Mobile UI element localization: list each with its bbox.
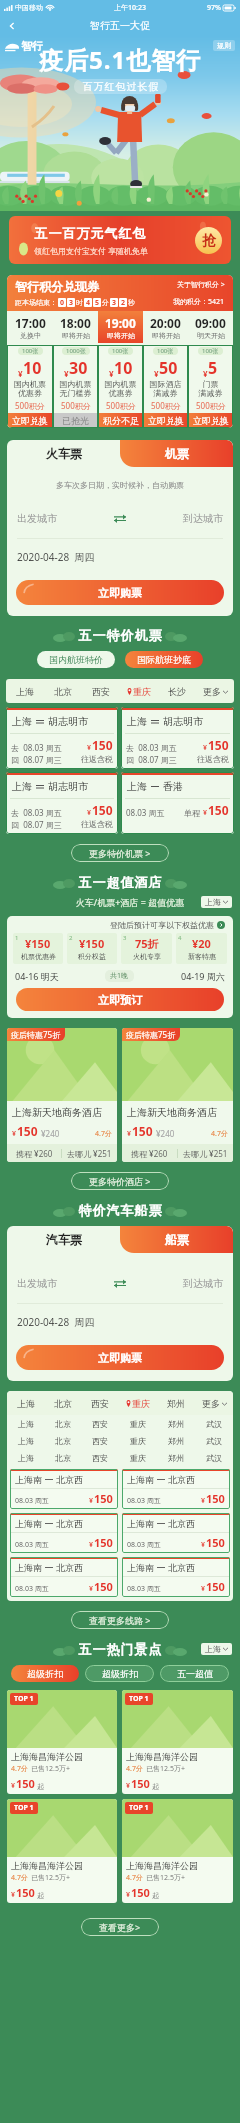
button[interactable]: 1 [13,933,63,964]
button[interactable]: 西安 [82,679,120,703]
button[interactable]: 立即购票 [16,1345,224,1370]
button[interactable]: 已抢光 [53,413,98,428]
button[interactable]: 100张 [188,345,233,428]
button[interactable]: 西安 [81,1432,119,1449]
staticText: 08.03 周五 [15,1584,49,1594]
staticText: 往返含税 [197,754,229,764]
button[interactable]: 17:00 [7,311,53,343]
button[interactable]: 武汉 [195,1432,233,1449]
button[interactable]: 火车票 [7,440,120,467]
button[interactable]: 机票 [120,440,233,467]
button[interactable]: 疫后特惠75折 [7,1028,117,1162]
button[interactable]: 100张 [143,345,188,428]
staticText: 北京 [55,1436,71,1446]
button[interactable]: 100张 [98,345,143,428]
button[interactable]: 重庆 [119,1432,157,1449]
button[interactable]: 重庆 [120,679,158,703]
button[interactable]: 五一超值 [160,1665,229,1682]
button[interactable]: TOP 1 [7,1799,117,1903]
button[interactable]: 郑州 [157,1391,195,1415]
button[interactable]: 上海南 [122,1469,230,1509]
button[interactable]: 疫后特惠75折 [122,1028,233,1162]
button[interactable]: 上海 [7,1432,44,1449]
button[interactable]: 立即兑换 [143,413,188,428]
button[interactable]: 郑州 [157,1415,195,1432]
staticText: 04-19 周六 [181,970,225,982]
button[interactable]: 上海南 [10,1469,118,1509]
button[interactable]: 关于智行积分 > [177,280,225,290]
button[interactable]: TOP 1 [122,1799,233,1903]
button[interactable]: 18:00 [53,311,98,343]
button[interactable]: 西安 [81,1449,119,1466]
button[interactable]: 积分不足 [98,413,143,428]
button[interactable]: 19:00 [98,311,143,343]
staticText: 4.7分 [11,1873,28,1883]
button[interactable]: 查看更多> [81,1918,159,1936]
staticText: 3 [69,298,74,307]
staticText: ¥ [12,1129,17,1139]
button[interactable]: 超级折扣 [11,1665,79,1682]
button[interactable]: 上海 [6,772,118,834]
button[interactable]: Back [0,15,24,36]
button[interactable]: 北京 [44,1391,81,1415]
button[interactable]: 更多 [195,1391,233,1415]
button[interactable]: 规则 [213,40,235,51]
button[interactable]: 立即购票 [16,580,224,605]
button[interactable]: 重庆 [119,1415,157,1432]
staticText: ¥150 [79,936,105,951]
button[interactable]: 4 [176,933,227,964]
staticText: ¥ [89,1540,94,1550]
button[interactable]: 20:00 [143,311,188,343]
button[interactable]: 立即兑换 [188,413,233,428]
button[interactable]: 上海 [7,1391,44,1415]
staticText: 100张 [112,347,129,355]
button[interactable]: 上海南 [122,1513,230,1553]
button[interactable]: 上海 [121,707,234,769]
button[interactable]: 五一百万元气红包 [9,216,231,264]
button[interactable]: 上海南 [122,1557,230,1597]
button[interactable]: 09:00 [188,311,233,343]
button[interactable]: 西安 [81,1391,119,1415]
staticText: 08.03 周五 [15,1540,49,1550]
button[interactable]: TOP 1 [7,1690,117,1794]
button[interactable]: 1000张 [53,345,98,428]
button[interactable]: 3 [121,933,172,964]
button[interactable]: 2 [67,933,117,964]
button[interactable]: 上海 [201,1643,232,1655]
button[interactable]: 北京 [44,1432,81,1449]
button[interactable]: 上海南 [10,1513,118,1553]
button[interactable]: 国内航班特价 [37,651,115,668]
button[interactable]: 上海 [7,1415,44,1432]
button[interactable]: 武汉 [195,1449,233,1466]
button[interactable]: 北京 [44,1415,81,1432]
button[interactable]: 重庆 [119,1391,157,1415]
button[interactable]: 100张 [7,345,53,428]
staticText: 武汉 [206,1419,222,1429]
button[interactable]: 武汉 [195,1415,233,1432]
button[interactable]: 国际航班抄底 [125,651,203,668]
button[interactable]: 重庆 [119,1449,157,1466]
button[interactable]: 西安 [81,1415,119,1432]
button[interactable]: 上海 [7,1449,44,1466]
button[interactable]: 郑州 [157,1449,195,1466]
button[interactable]: 上海 [121,772,234,834]
button[interactable]: 郑州 [157,1432,195,1449]
button[interactable]: 汽车票 [7,1226,120,1253]
button[interactable]: 立即兑换 [7,413,53,428]
button[interactable]: 更多特价酒店 > [71,1172,169,1190]
button[interactable]: 立即预订 [16,988,224,1011]
button[interactable]: 更多特价机票 > [71,844,169,862]
button[interactable]: 更多 [196,679,234,703]
button[interactable]: 查看更多线路 > [71,1611,169,1629]
button[interactable]: TOP 1 [122,1690,233,1794]
button[interactable]: 北京 [44,679,82,703]
button[interactable]: 上海南 [10,1557,118,1597]
button[interactable]: 上海 [6,679,44,703]
button[interactable]: 长沙 [158,679,196,703]
button[interactable]: 上海 [201,896,232,908]
button[interactable]: 船票 [120,1226,233,1253]
button[interactable]: 超级折扣 [85,1665,154,1682]
staticText: 胡志明市 [48,715,88,728]
button[interactable]: 北京 [44,1449,81,1466]
button[interactable]: 上海 [6,707,118,769]
